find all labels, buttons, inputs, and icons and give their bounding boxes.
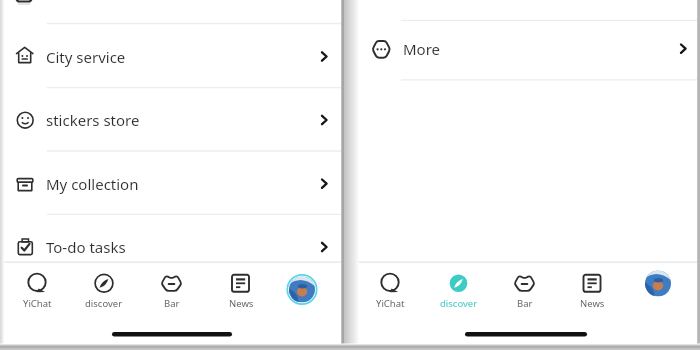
button[interactable] — [497, 263, 553, 313]
staticText: News — [229, 297, 254, 310]
staticText: To-do tasks — [46, 237, 126, 257]
button[interactable] — [2, 151, 341, 214]
staticText: Bar — [164, 297, 180, 310]
button[interactable] — [362, 263, 418, 313]
button[interactable] — [9, 263, 65, 313]
button[interactable] — [2, 24, 341, 88]
staticText: My collection — [46, 174, 139, 194]
button[interactable] — [630, 263, 686, 313]
staticText: Bar — [517, 297, 533, 310]
button[interactable] — [354, 21, 697, 80]
button[interactable] — [213, 263, 269, 313]
staticText: YiChat — [23, 297, 52, 310]
staticText: YiChat — [376, 297, 405, 310]
button[interactable] — [2, 88, 341, 151]
button[interactable] — [76, 263, 132, 313]
staticText: stickers store — [46, 110, 140, 130]
button[interactable] — [431, 263, 487, 313]
staticText: City service — [46, 47, 126, 67]
staticText: More — [403, 39, 441, 59]
staticText: News — [580, 297, 605, 310]
button[interactable] — [144, 263, 200, 313]
button[interactable] — [274, 263, 330, 313]
staticText: discover — [440, 297, 478, 310]
button[interactable] — [564, 263, 620, 313]
staticText: discover — [85, 297, 123, 310]
button[interactable] — [2, 214, 341, 262]
